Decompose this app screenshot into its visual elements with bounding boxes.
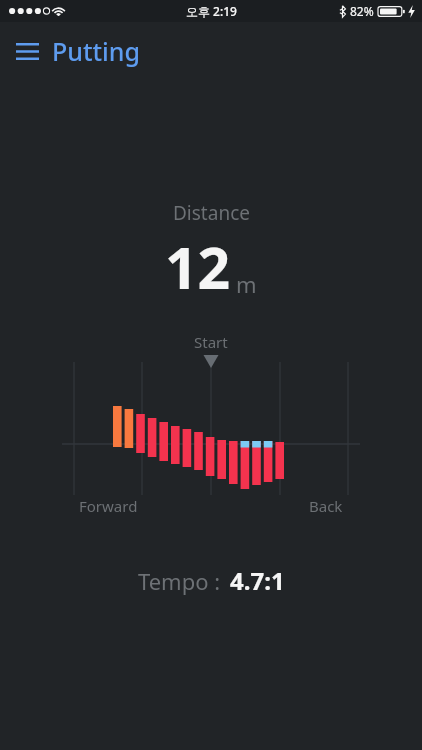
staticText: 82%	[350, 3, 374, 19]
staticText: m	[236, 269, 257, 299]
staticText: Distance	[173, 200, 250, 226]
staticText: Putting	[52, 34, 141, 68]
staticText: Back	[309, 496, 343, 516]
staticText: 12	[165, 228, 231, 306]
other: Menu	[16, 43, 39, 60]
staticText: 오후 2:19	[186, 3, 237, 19]
staticText: Start	[194, 332, 228, 352]
button[interactable]: Menu	[8, 26, 149, 76]
staticText: Forward	[79, 496, 138, 516]
staticText: Tempo :	[138, 566, 221, 596]
staticText: 4.7:1	[230, 564, 285, 597]
